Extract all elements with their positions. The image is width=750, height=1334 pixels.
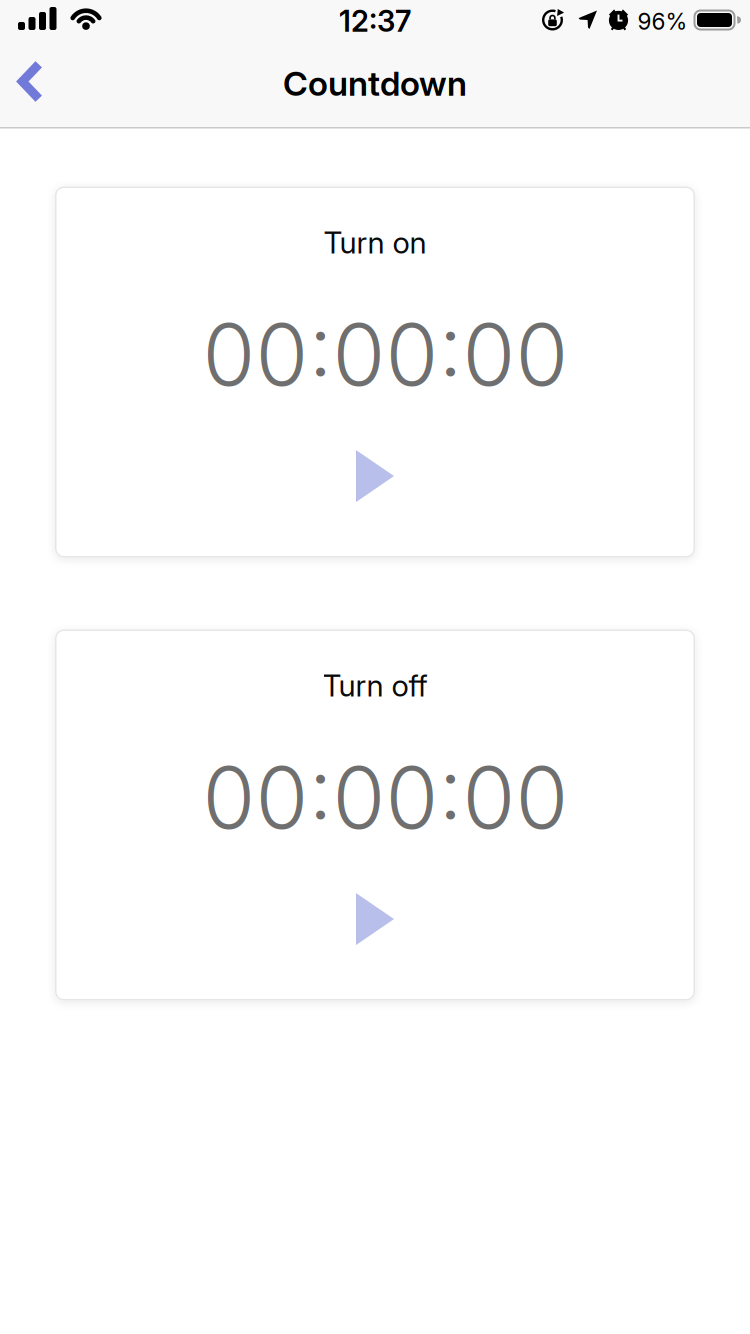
button[interactable]: Start — [356, 849, 394, 945]
staticText: Countdown — [283, 63, 467, 104]
button[interactable]: Start — [356, 406, 394, 502]
staticText: Turn off — [322, 667, 427, 704]
staticText: Turn on — [323, 224, 426, 261]
staticText: 96% — [637, 8, 687, 35]
staticText: 12:37 — [339, 3, 411, 39]
staticText: 00:00:00 — [202, 303, 568, 406]
staticText: 00:00:00 — [202, 746, 568, 849]
button[interactable]: Back — [0, 59, 43, 103]
